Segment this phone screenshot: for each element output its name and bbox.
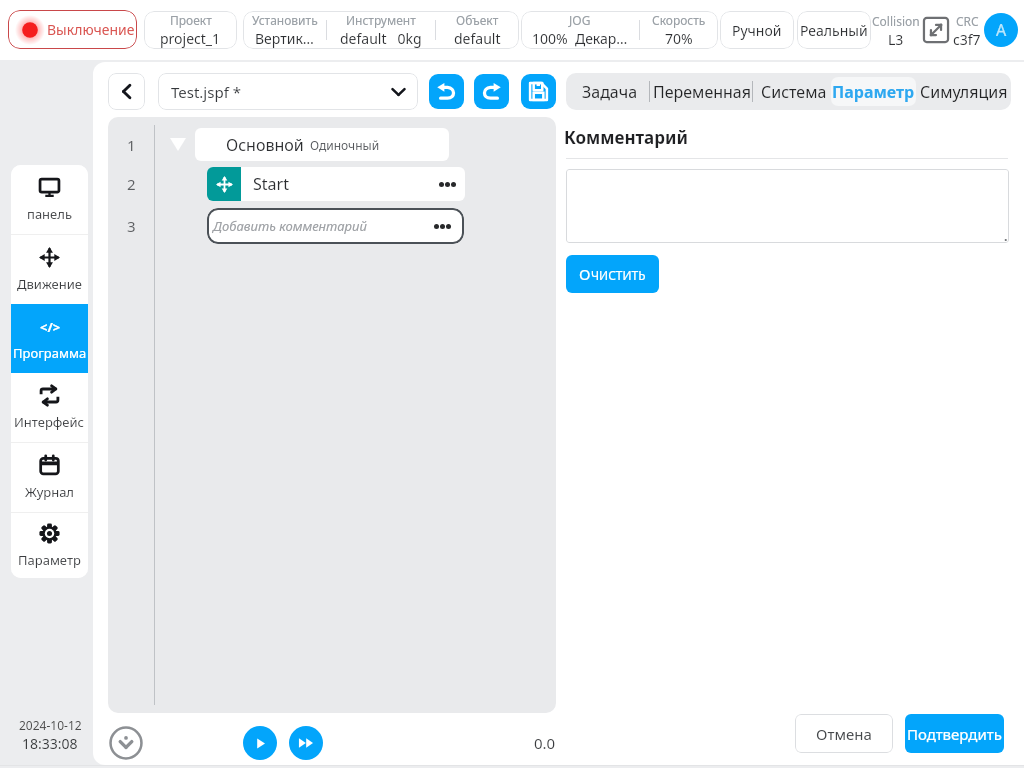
button[interactable]: Параметр <box>831 77 916 106</box>
button[interactable]: Интерфейс <box>11 373 88 442</box>
staticText: default <box>454 29 501 48</box>
button[interactable]: Основной <box>195 128 449 161</box>
button[interactable]: Задача <box>574 77 646 106</box>
staticText: 2024-10-12 <box>19 717 82 733</box>
staticText: c3f7 <box>953 30 981 49</box>
staticText: Основной <box>226 134 304 156</box>
staticText: О <box>579 264 591 284</box>
button[interactable]: Ручной <box>720 11 794 49</box>
button[interactable]: Scroll to bottom <box>109 726 143 760</box>
staticText: панель <box>27 205 72 223</box>
button[interactable]: Выключение <box>8 10 137 49</box>
staticText: Подтвердить <box>907 724 1002 744</box>
button[interactable] <box>566 169 1009 243</box>
button[interactable]: Save <box>521 74 556 109</box>
button[interactable]: О <box>566 255 659 293</box>
button[interactable]: Отмена <box>795 714 893 753</box>
staticText: Выключение <box>47 20 135 39</box>
staticText: ЧИСТИТЬ <box>591 267 646 283</box>
button[interactable]: JOG <box>521 11 718 49</box>
button[interactable]: Fast forward <box>289 726 323 760</box>
staticText: Collision <box>872 13 920 29</box>
staticText: 70% <box>665 29 693 48</box>
staticText: Ручной <box>732 21 782 40</box>
staticText: 18:33:08 <box>22 734 78 753</box>
staticText: Вертик… <box>255 29 314 48</box>
button[interactable]: Подтвердить <box>905 714 1004 753</box>
staticText: 2 <box>127 174 136 194</box>
staticText: Инструмент <box>346 12 416 28</box>
staticText: Программа <box>13 344 87 362</box>
staticText: Движение <box>17 275 82 293</box>
staticText: Реальный <box>800 21 868 40</box>
button[interactable]: Переменная <box>652 77 752 106</box>
staticText: A <box>996 19 1007 41</box>
button[interactable]: A <box>984 13 1018 47</box>
staticText: Интерфейс <box>14 413 85 431</box>
staticText: Комментарий <box>564 126 688 149</box>
button[interactable]: Undo <box>429 74 464 109</box>
staticText: Отмена <box>816 724 872 744</box>
staticText: project_1 <box>160 29 221 48</box>
button[interactable]: Start <box>207 167 465 201</box>
staticText: Добавить комментарий <box>213 217 434 235</box>
button[interactable]: Проект <box>144 11 237 49</box>
staticText: 0.0 <box>534 733 556 753</box>
button[interactable]: панель <box>11 165 88 234</box>
staticText: Переменная <box>653 81 751 103</box>
staticText: Параметр <box>18 551 81 569</box>
button[interactable]: Параметр <box>11 513 88 578</box>
button[interactable]: Play <box>243 726 277 760</box>
staticText: Test.jspf * <box>171 82 391 102</box>
button[interactable]: Система <box>756 77 831 106</box>
staticText: Симуляция <box>920 81 1008 103</box>
staticText: default 0kg <box>340 29 422 48</box>
button[interactable]: Симуляция <box>919 77 1009 106</box>
staticText: Параметр <box>832 81 915 103</box>
button[interactable]: Движение <box>11 235 88 304</box>
staticText: Система <box>761 81 827 103</box>
staticText: L3 <box>888 30 904 49</box>
staticText: 3 <box>127 216 136 236</box>
staticText: Скорость <box>652 12 706 28</box>
staticText: 100% Декар… <box>532 29 628 48</box>
button[interactable]: Установить <box>243 11 519 49</box>
staticText: Объект <box>456 12 499 28</box>
staticText: JOG <box>569 12 591 28</box>
button[interactable]: Back <box>108 73 145 110</box>
staticText: Одиночный <box>310 137 380 153</box>
staticText: Установить <box>252 12 318 28</box>
staticText: </> <box>40 318 61 336</box>
button[interactable]: Test.jspf * <box>158 73 418 110</box>
staticText: Start <box>253 173 439 195</box>
button[interactable]: Добавить комментарий <box>207 208 464 244</box>
staticText: 1 <box>127 135 136 155</box>
staticText: CRC <box>956 13 979 29</box>
button[interactable]: Fullscreen <box>922 16 950 44</box>
staticText: Задача <box>582 81 638 103</box>
button[interactable]: Журнал <box>11 443 88 512</box>
button[interactable]: Redo <box>474 74 509 109</box>
staticText: Журнал <box>25 483 74 501</box>
button[interactable]: </> <box>11 304 88 373</box>
staticText: Проект <box>170 12 212 28</box>
button[interactable]: Реальный <box>797 11 871 49</box>
